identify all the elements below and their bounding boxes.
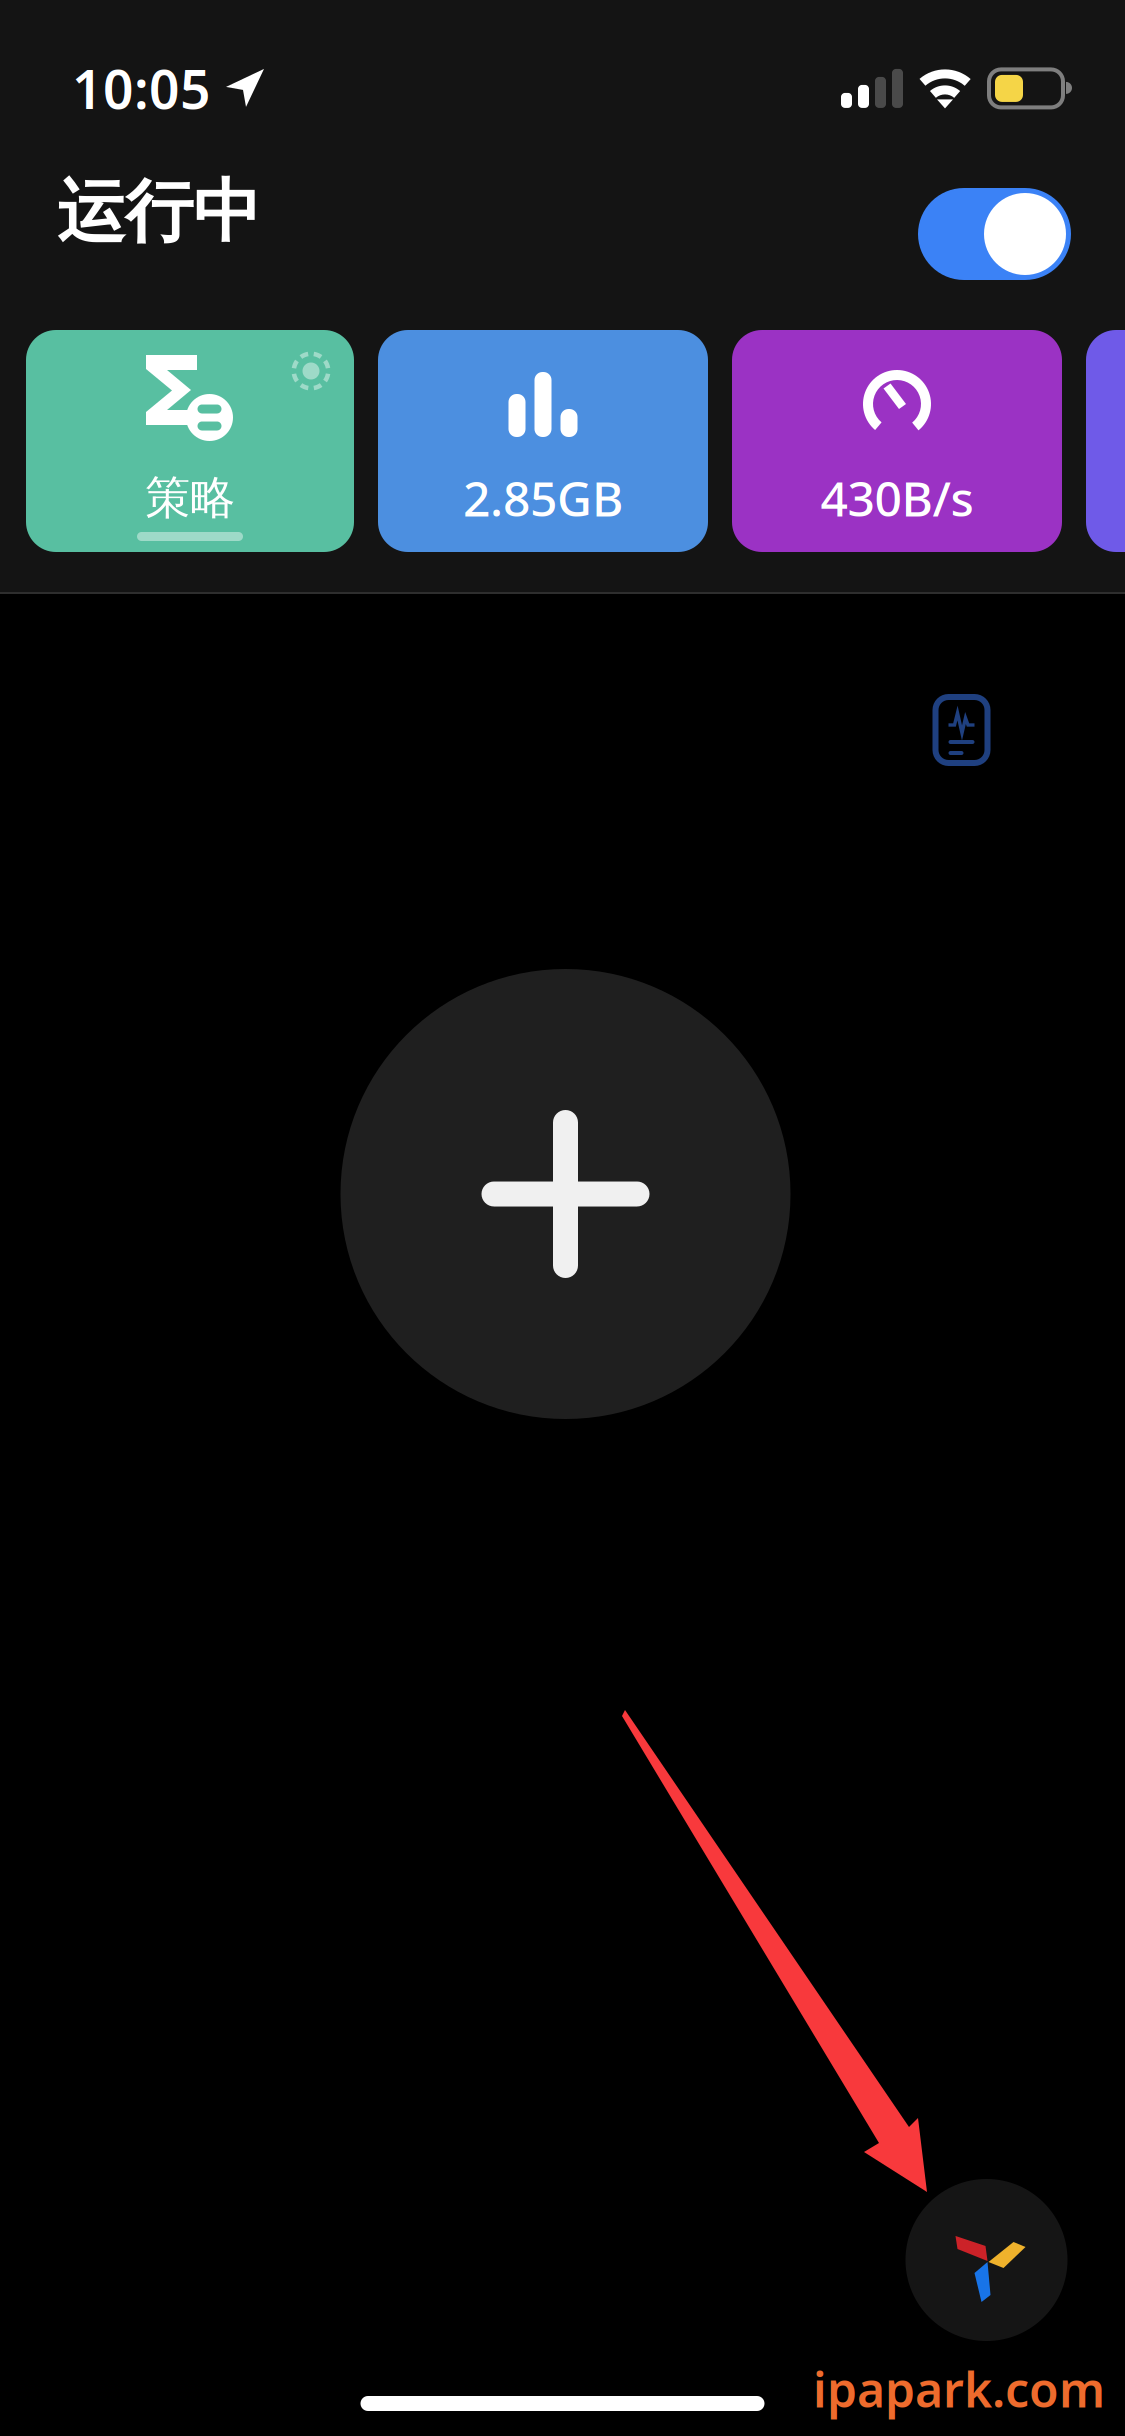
staticText: 10:05: [72, 53, 211, 124]
staticText: 策略: [145, 470, 235, 526]
staticText: 2.85GB: [463, 466, 623, 530]
button[interactable]: 2.85GB: [378, 330, 708, 552]
staticText: 运行中: [57, 170, 261, 253]
button[interactable]: 策略: [26, 330, 354, 552]
staticText: ipapark.com: [813, 2357, 1105, 2421]
button[interactable]: 430B/s: [732, 330, 1062, 552]
button[interactable]: VPN toggle: [918, 188, 1071, 280]
button[interactable]: Assistant: [905, 2179, 1067, 2341]
staticText: 430B/s: [820, 466, 973, 530]
button[interactable]: Traffic log: [935, 697, 987, 763]
button[interactable]: Add configuration: [340, 969, 790, 1419]
